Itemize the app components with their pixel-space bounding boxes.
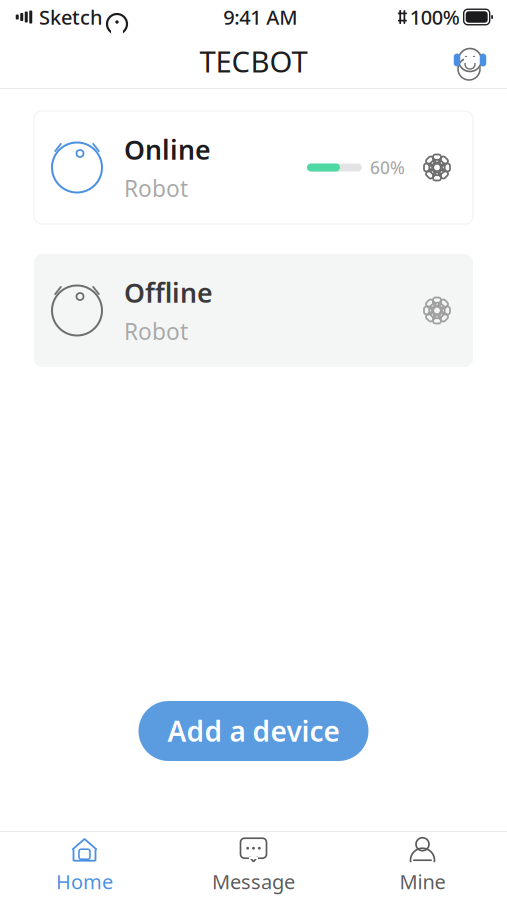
staticText: 9:41 AM [223, 4, 297, 30]
staticText: 100% [410, 4, 460, 30]
button[interactable]: Home [0, 832, 169, 900]
button[interactable]: Customer support [447, 39, 493, 83]
staticText: Message [212, 868, 295, 895]
button[interactable]: Online [34, 111, 473, 224]
staticText: Sketch [39, 4, 103, 30]
staticText: Mine [399, 868, 445, 895]
button[interactable]: Mine [338, 832, 507, 900]
staticText: 60% [370, 156, 405, 179]
staticText: Add a device [167, 712, 339, 750]
button[interactable]: Add a device [138, 701, 368, 761]
button[interactable]: Message [169, 832, 338, 900]
staticText: Online [124, 132, 211, 167]
staticText: Robot [124, 316, 188, 346]
staticText: Home [56, 868, 113, 895]
button[interactable]: Offline [34, 254, 473, 367]
staticText: Offline [124, 275, 213, 310]
staticText: Robot [124, 173, 188, 203]
staticText: TECBOT [199, 41, 307, 80]
